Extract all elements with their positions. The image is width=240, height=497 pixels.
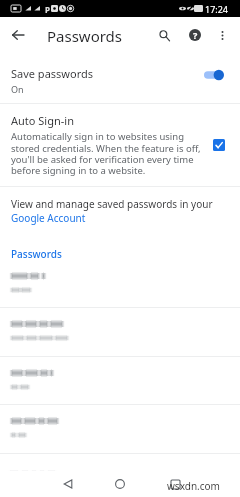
- staticText: P: [45, 4, 50, 15]
- button[interactable]: [0, 454, 240, 497]
- button[interactable]: Recent apps: [162, 471, 188, 497]
- button[interactable]: [0, 308, 240, 357]
- button[interactable]: Navigate up: [3, 20, 33, 50]
- button[interactable]: [0, 405, 240, 454]
- staticText: 17:24: [205, 3, 229, 15]
- staticText: View and manage saved passwords in your: [11, 197, 213, 211]
- button[interactable]: Auto Sign-in: [0, 104, 240, 186]
- staticText: Save passwords: [11, 66, 93, 81]
- button[interactable]: [0, 260, 240, 308]
- button[interactable]: Help: [181, 21, 209, 49]
- button[interactable]: Save passwords: [0, 53, 240, 103]
- staticText: Google Account: [11, 211, 86, 225]
- staticText: On: [11, 83, 24, 95]
- button[interactable]: Back: [55, 471, 81, 497]
- staticText: ?: [193, 29, 198, 41]
- staticText: Auto Sign-in: [11, 113, 74, 128]
- button[interactable]: Search: [150, 21, 178, 49]
- button[interactable]: View and manage saved passwords in your: [0, 187, 240, 232]
- staticText: Automatically sign in to websites using …: [11, 130, 207, 176]
- button[interactable]: Home: [107, 471, 133, 497]
- staticText: Passwords: [11, 247, 62, 261]
- staticText: Passwords: [47, 26, 123, 46]
- button[interactable]: More options: [208, 21, 236, 49]
- staticText: wsxdn.com: [167, 479, 220, 493]
- button[interactable]: [0, 357, 240, 405]
